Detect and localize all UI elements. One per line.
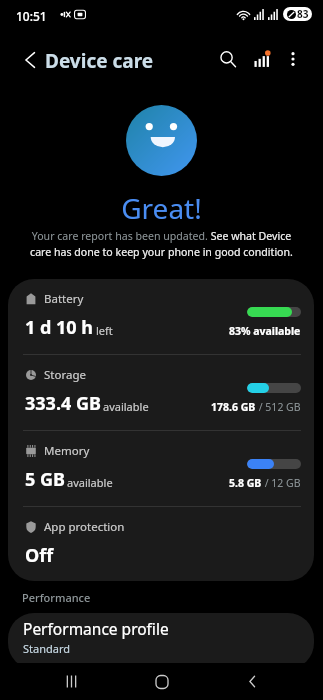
button[interactable]: Search <box>209 40 246 77</box>
staticText: 1 d 10 h <box>25 315 94 340</box>
staticText: left <box>96 323 113 338</box>
staticText: / 12 GB <box>262 476 301 490</box>
button[interactable]: Recent apps <box>48 663 94 700</box>
staticText: Performance profile <box>23 618 169 639</box>
staticText: Performance <box>22 590 91 605</box>
button[interactable]: Navigate up <box>11 41 48 78</box>
staticText: Standard <box>23 641 71 656</box>
staticText: 83% available <box>229 324 301 338</box>
staticText: Your care report has been updated. See w… <box>24 229 299 259</box>
staticText: / 512 GB <box>256 400 301 414</box>
button[interactable]: More options <box>274 40 311 77</box>
staticText: 83 <box>297 7 309 21</box>
button[interactable]: Usage statistics <box>243 40 280 77</box>
button[interactable]: App protection <box>8 507 314 581</box>
staticText: Great! <box>0 189 323 227</box>
staticText: 178.6 GB <box>211 400 256 414</box>
button[interactable]: Home <box>139 663 185 700</box>
button[interactable]: Back <box>229 663 275 700</box>
button[interactable]: Storage <box>8 355 314 430</box>
staticText: 333.4 GB <box>25 391 101 416</box>
staticText: App protection <box>44 519 125 535</box>
staticText: Device care <box>45 48 154 74</box>
button[interactable]: Battery <box>8 279 314 354</box>
staticText: 10:51 <box>16 8 47 24</box>
staticText: available <box>67 475 113 490</box>
button[interactable]: Memory <box>8 431 314 506</box>
staticText: Battery <box>44 291 84 307</box>
staticText: Storage <box>44 367 86 383</box>
staticText: available <box>103 399 149 414</box>
staticText: 5 GB <box>25 467 65 492</box>
button[interactable]: Performance profile <box>8 613 314 669</box>
staticText: Off <box>25 543 54 568</box>
staticText: 5.8 GB <box>229 476 262 490</box>
staticText: Memory <box>44 443 90 459</box>
